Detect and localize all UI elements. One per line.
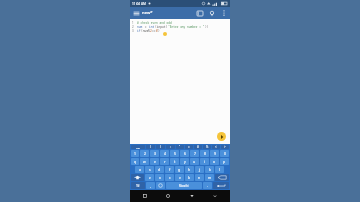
staticText: new* — [142, 10, 153, 16]
staticText: < — [215, 145, 217, 149]
staticText: !?# — [136, 184, 140, 188]
staticText: ( — [150, 145, 151, 149]
staticText: c — [169, 175, 171, 180]
button[interactable]: ( — [146, 145, 155, 149]
button[interactable]: Open navigation menu — [130, 7, 142, 19]
button[interactable]: z — [145, 174, 154, 181]
button[interactable]: Recent apps — [137, 190, 153, 202]
button[interactable]: w — [140, 158, 149, 165]
button[interactable]: 4 — [160, 150, 169, 157]
button[interactable]: More options — [218, 7, 230, 19]
button[interactable]: s — [145, 166, 154, 173]
staticText: if — [137, 29, 141, 33]
button[interactable]: t — [170, 158, 179, 165]
staticText: t — [174, 159, 176, 164]
button[interactable]: e — [150, 158, 159, 165]
button[interactable]: 5 — [170, 150, 179, 157]
staticText: p — [223, 159, 226, 164]
button[interactable]: 0 — [220, 150, 229, 157]
button[interactable]: d — [155, 166, 164, 173]
button[interactable]: a — [135, 166, 144, 173]
button[interactable]: q — [131, 158, 139, 165]
staticText: q — [134, 159, 137, 164]
staticText: Marathi — [179, 184, 189, 188]
staticText: h — [188, 167, 191, 172]
button[interactable]: 1 — [131, 150, 139, 157]
staticText: 1 — [132, 21, 134, 25]
button[interactable]: > — [221, 145, 229, 149]
button[interactable]: 1 — [130, 19, 230, 144]
button[interactable]: Backspace — [215, 174, 229, 181]
button[interactable]: , — [146, 182, 155, 189]
button[interactable]: Hide keyboard — [207, 190, 223, 202]
button[interactable]: < — [212, 145, 220, 149]
button[interactable]: Enter — [213, 182, 229, 189]
button[interactable]: % — [203, 145, 211, 149]
button[interactable]: Back — [184, 190, 200, 202]
staticText: 7 — [194, 151, 196, 156]
staticText: i — [204, 159, 205, 164]
staticText: == — [152, 29, 156, 33]
button[interactable]: k — [205, 166, 214, 173]
staticText: ) — [160, 145, 161, 149]
staticText: 4 — [164, 151, 166, 156]
button[interactable]: = — [185, 145, 193, 149]
staticText: u — [193, 159, 196, 164]
staticText: s — [149, 167, 151, 172]
button[interactable]: v — [175, 174, 184, 181]
button[interactable]: : — [166, 145, 175, 149]
button[interactable]: f — [165, 166, 174, 173]
staticText: e — [154, 159, 156, 164]
button[interactable]: y — [180, 158, 189, 165]
staticText: % — [206, 145, 209, 149]
button[interactable]: p — [220, 158, 229, 165]
button[interactable]: m — [205, 174, 214, 181]
staticText: v — [179, 175, 181, 180]
staticText: w — [143, 159, 146, 164]
staticText: k — [209, 167, 211, 172]
button[interactable]: b — [185, 174, 194, 181]
staticText: ) — [158, 29, 160, 33]
button[interactable]: 8 — [200, 150, 209, 157]
button[interactable]: l — [215, 166, 224, 173]
button[interactable]: " — [176, 145, 184, 149]
staticText: m — [208, 175, 212, 180]
staticText: = — [188, 145, 190, 149]
staticText: 0 — [224, 151, 226, 156]
staticText: n — [198, 175, 201, 180]
button[interactable]: 9 — [210, 150, 219, 157]
staticText: g — [178, 167, 181, 172]
button[interactable]: o — [210, 158, 219, 165]
button[interactable]: 3 — [150, 150, 159, 157]
staticText: a — [139, 167, 141, 172]
button[interactable]: c — [165, 174, 174, 181]
button[interactable]: Tabs — [194, 7, 206, 19]
button[interactable]: Marathi — [166, 182, 202, 189]
button[interactable]: 7 — [190, 150, 199, 157]
button[interactable]: !?# — [131, 182, 145, 189]
button[interactable]: 2 — [140, 150, 149, 157]
button[interactable]: ) — [156, 145, 165, 149]
staticText: r — [164, 159, 166, 164]
button[interactable]: x — [155, 174, 164, 181]
button[interactable]: Run code — [217, 132, 226, 141]
button[interactable]: . — [203, 182, 212, 189]
button[interactable]: r — [160, 158, 169, 165]
button[interactable]: Emoji — [156, 182, 165, 189]
button[interactable]: i — [200, 158, 209, 165]
staticText: > — [224, 145, 226, 149]
button[interactable]: Shift — [131, 174, 144, 181]
button[interactable]: Tab — [131, 145, 145, 149]
staticText: 2 — [150, 29, 152, 33]
button[interactable]: h — [185, 166, 194, 173]
staticText: 0 — [156, 29, 158, 33]
staticText: z — [149, 175, 151, 180]
button[interactable]: Hints — [206, 7, 218, 19]
button[interactable]: u — [190, 158, 199, 165]
button[interactable]: 6 — [180, 150, 189, 157]
button[interactable]: j — [195, 166, 204, 173]
button[interactable]: g — [175, 166, 184, 173]
button[interactable]: n — [195, 174, 204, 181]
button[interactable]: Home — [160, 190, 176, 202]
button[interactable]: # — [194, 145, 202, 149]
